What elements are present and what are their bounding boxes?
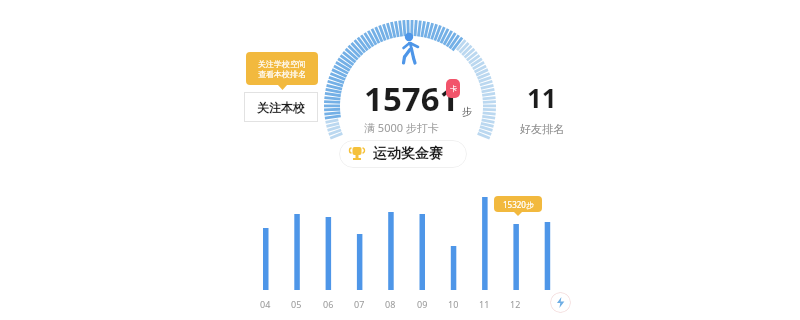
button[interactable]: 10 xyxy=(444,298,462,310)
button[interactable]: 12 xyxy=(506,298,524,310)
staticText: 关注本校 xyxy=(257,100,305,115)
button[interactable]: 05 xyxy=(287,298,305,310)
button[interactable]: 09 xyxy=(413,298,431,310)
staticText: 07 xyxy=(354,298,365,310)
button[interactable]: 06 xyxy=(319,298,337,310)
staticText: 06 xyxy=(323,298,334,310)
button[interactable]: New xyxy=(446,79,460,98)
staticText: 步 xyxy=(462,105,472,118)
staticText: 查看本校排名 xyxy=(258,69,306,79)
button[interactable]: 11 xyxy=(475,298,493,310)
button[interactable]: 11 xyxy=(512,80,572,136)
staticText: 好友排名 xyxy=(520,122,564,136)
staticText: 11 xyxy=(479,298,490,310)
staticText: 卡 xyxy=(450,84,457,93)
staticText: 12 xyxy=(510,298,521,310)
staticText: 15761 xyxy=(364,76,459,121)
button[interactable]: 08 xyxy=(381,298,399,310)
staticText: 08 xyxy=(385,298,396,310)
staticText: 05 xyxy=(291,298,302,310)
staticText: 关注学校空间 xyxy=(258,59,306,69)
staticText: 运动奖金赛 xyxy=(373,145,443,163)
button[interactable]: Energy xyxy=(550,292,571,313)
staticText: 09 xyxy=(417,298,428,310)
staticText: 04 xyxy=(260,298,271,310)
button[interactable]: 关注学校空间 xyxy=(246,52,318,85)
staticText: 满 5000 步打卡 xyxy=(364,120,439,135)
button[interactable]: 15320步 xyxy=(494,196,542,212)
button[interactable]: 07 xyxy=(350,298,368,310)
staticText: 15320步 xyxy=(503,199,534,210)
button[interactable]: 运动奖金赛 xyxy=(339,140,467,168)
button[interactable]: 关注本校 xyxy=(244,92,318,122)
button[interactable]: 04 xyxy=(256,298,274,310)
staticText: 10 xyxy=(448,298,459,310)
staticText: 11 xyxy=(527,80,557,115)
other: Steps xyxy=(396,32,422,66)
